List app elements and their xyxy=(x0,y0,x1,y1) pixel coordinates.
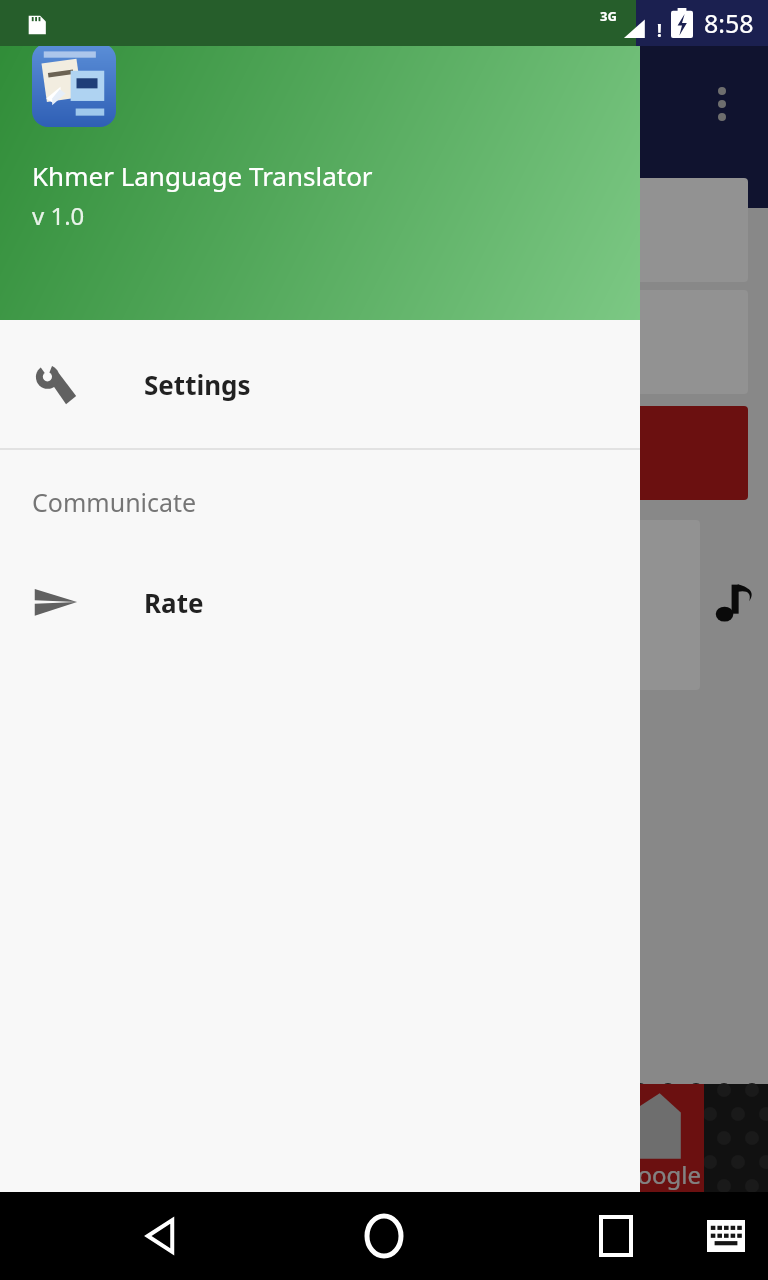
button[interactable]: Settings xyxy=(0,320,640,448)
staticText: CLEAR xyxy=(339,433,430,474)
button[interactable]: Rate xyxy=(0,554,640,650)
staticText: ! xyxy=(657,19,662,42)
button[interactable]: Switch keyboard xyxy=(694,1192,758,1280)
button[interactable]: More options xyxy=(700,82,744,126)
staticText: Rate xyxy=(144,585,204,620)
button[interactable]: Recent apps xyxy=(584,1192,648,1280)
staticText: Khmer Language Translator xyxy=(32,158,373,193)
button[interactable]: Home xyxy=(348,1192,420,1280)
other: Speak xyxy=(714,582,758,626)
staticText: 8:58 xyxy=(704,6,754,40)
button[interactable]: Google xyxy=(0,1084,704,1192)
staticText: 3G xyxy=(600,7,617,25)
button[interactable]: CLEAR xyxy=(20,406,748,500)
button[interactable]: Back xyxy=(128,1192,192,1280)
staticText: Settings xyxy=(144,367,251,402)
staticText: Communicate xyxy=(32,485,197,519)
staticText: Google xyxy=(620,1158,701,1191)
staticText: v 1.0 xyxy=(32,199,85,232)
